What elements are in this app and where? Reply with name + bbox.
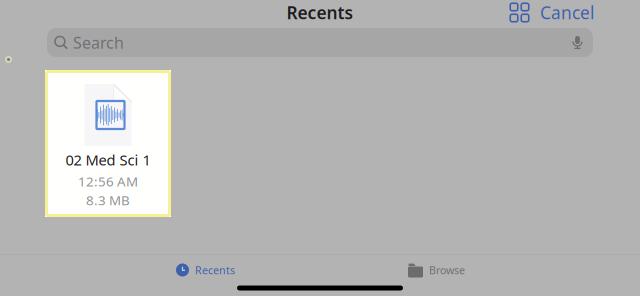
button[interactable]: Cancel: [529, 0, 597, 25]
button[interactable]: Search: [47, 28, 593, 57]
staticText: 02 Med Sci 1: [65, 150, 150, 169]
staticText: Recents: [286, 1, 353, 24]
staticText: 12:56 AM: [78, 172, 138, 190]
staticText: Browse: [429, 263, 465, 277]
button[interactable]: 02 Med Sci 1: [45, 70, 171, 217]
staticText: Cancel: [540, 1, 594, 24]
button[interactable]: Icon view: [510, 0, 529, 25]
button[interactable]: Recents: [90, 255, 321, 285]
staticText: Recents: [195, 263, 235, 277]
staticText: 8.3 MB: [86, 191, 130, 209]
staticText: Search: [73, 32, 124, 53]
button[interactable]: Browse: [321, 255, 552, 285]
